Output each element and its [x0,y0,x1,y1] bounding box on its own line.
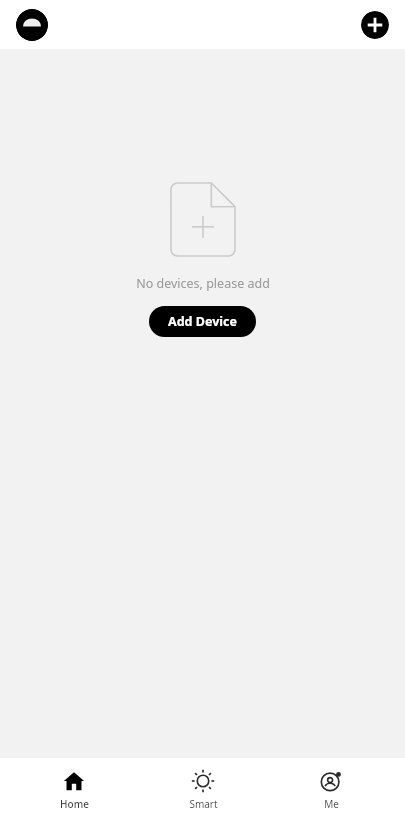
button[interactable]: Add Device [149,306,256,337]
staticText: Smart [189,797,218,811]
staticText: Add Device [168,313,237,330]
button[interactable]: Profile [16,9,48,41]
button[interactable]: Home [19,758,129,818]
button[interactable]: Smart [148,758,258,818]
staticText: No devices, please add [136,275,270,292]
staticText: Home [60,797,89,811]
button[interactable]: Add [361,11,389,39]
staticText: Me [324,797,339,811]
button[interactable]: Me [276,758,386,818]
